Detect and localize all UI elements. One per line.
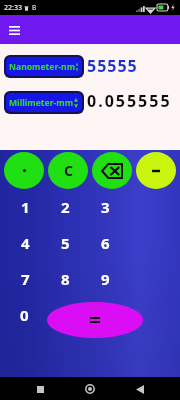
staticText: 1 [21, 197, 30, 217]
staticText: 9 [101, 269, 110, 289]
staticText: 6 [101, 233, 110, 253]
staticText: Millimeter-mm [9, 97, 74, 109]
button[interactable]: Back [130, 379, 150, 399]
staticText: Nanometer-nm [9, 61, 76, 73]
button[interactable]: Open navigation menu [4, 20, 24, 40]
staticText: 22:33 [4, 3, 22, 13]
button[interactable]: Minus [136, 152, 176, 189]
staticText: 5 [61, 233, 70, 253]
staticText: C [64, 161, 73, 180]
staticText: 8 [61, 269, 70, 289]
button[interactable]: Clear [48, 152, 88, 189]
button[interactable]: Backspace [92, 152, 132, 189]
button[interactable]: 5 [46, 225, 84, 261]
staticText: B [32, 3, 37, 12]
button[interactable]: Nanometer-nm [6, 57, 82, 76]
button[interactable]: 1 [6, 189, 44, 225]
button[interactable]: Home [80, 379, 100, 399]
button[interactable]: 8 [46, 261, 84, 297]
button[interactable]: 7 [6, 261, 44, 297]
button[interactable]: 0 [5, 297, 43, 333]
staticText: 2 [61, 197, 70, 217]
button[interactable]: 2 [46, 189, 84, 225]
staticText: 0.055555 [87, 90, 172, 112]
staticText: 0 [20, 305, 29, 325]
button[interactable]: Millimeter-mm [6, 93, 82, 112]
button[interactable]: 9 [86, 261, 124, 297]
button[interactable]: 4 [6, 225, 44, 261]
staticText: 4 [21, 233, 30, 253]
staticText: 3 [101, 197, 110, 217]
button[interactable]: Decimal point [4, 152, 44, 189]
button[interactable]: 3 [86, 189, 124, 225]
button[interactable]: 6 [86, 225, 124, 261]
staticText: 55555 [87, 55, 138, 77]
button[interactable]: Recent apps [30, 379, 50, 399]
staticText: 7 [21, 269, 30, 289]
button[interactable]: Equals [47, 302, 143, 338]
